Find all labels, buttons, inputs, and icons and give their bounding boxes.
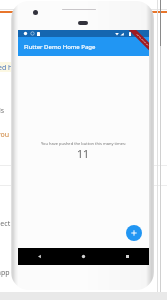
staticText: ed h bbox=[0, 63, 13, 73]
staticText: 11 bbox=[77, 147, 90, 161]
button[interactable]: Increment bbox=[126, 225, 142, 241]
staticText: ls bbox=[0, 106, 5, 116]
staticText: nect bbox=[0, 219, 11, 229]
staticText: app bbox=[0, 268, 10, 278]
staticText: You have pushed the button this many tim… bbox=[41, 141, 126, 146]
button[interactable]: Home bbox=[61, 248, 105, 265]
button[interactable]: Recents bbox=[105, 248, 149, 265]
staticText: Flutter Demo Home Page bbox=[24, 43, 96, 51]
staticText: you bbox=[0, 130, 10, 140]
button[interactable]: Back bbox=[18, 248, 61, 265]
